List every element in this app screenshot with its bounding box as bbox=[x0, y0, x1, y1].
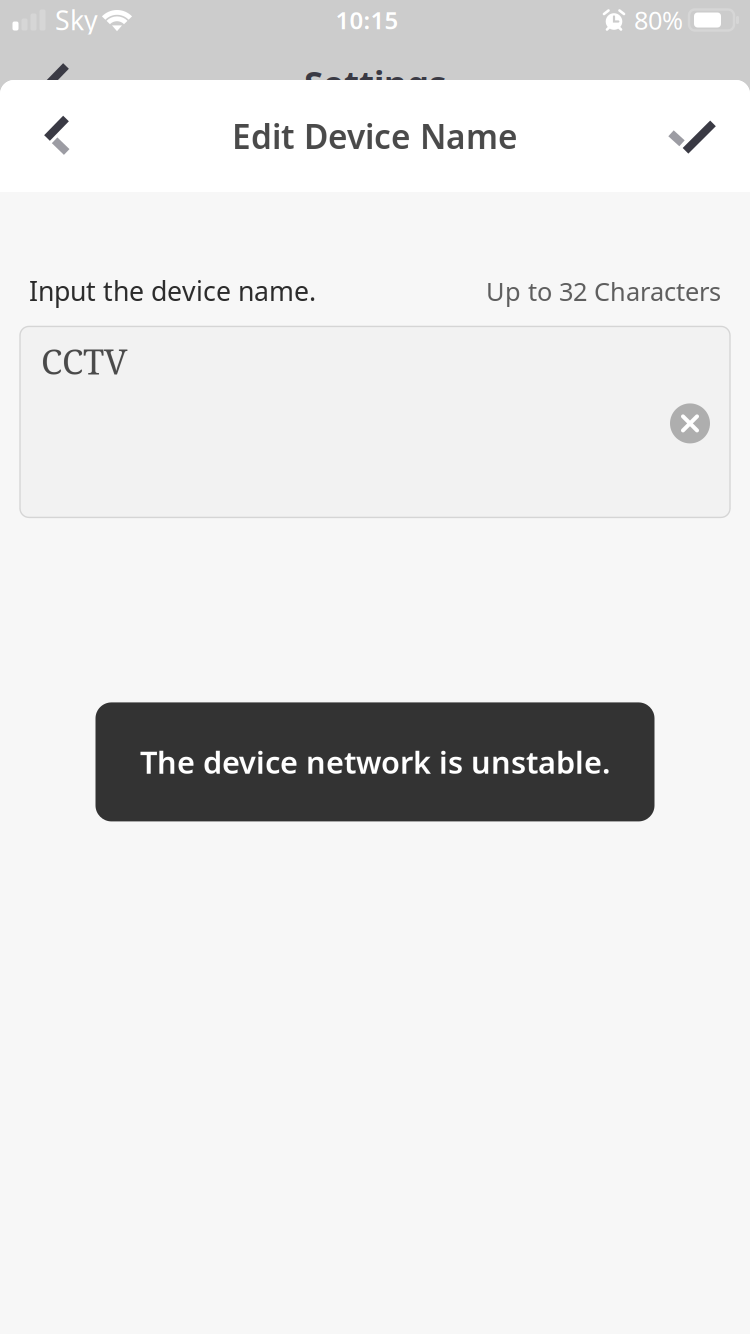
button[interactable]: Clear text bbox=[670, 403, 710, 443]
button[interactable]: Save bbox=[634, 80, 750, 192]
staticText: CCTV bbox=[41, 337, 127, 385]
staticText: 10:15 bbox=[335, 4, 398, 36]
staticText: Input the device name. bbox=[29, 273, 316, 308]
staticText: Sky bbox=[55, 2, 98, 38]
button[interactable]: Back bbox=[0, 80, 116, 192]
staticText: Edit Device Name bbox=[232, 114, 518, 158]
staticText: Settings bbox=[304, 59, 446, 105]
staticText: The device network is unstable. bbox=[140, 742, 610, 782]
staticText: Up to 32 Characters bbox=[486, 274, 721, 308]
staticText: 80% bbox=[634, 3, 683, 37]
